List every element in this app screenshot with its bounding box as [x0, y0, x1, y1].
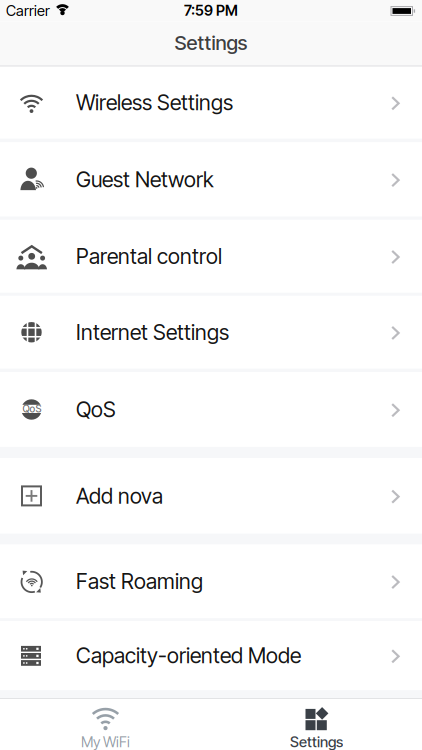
staticText: 7:59 PM [184, 2, 238, 19]
button[interactable]: Settings [211, 699, 422, 750]
button[interactable]: Add nova [0, 458, 422, 534]
staticText: My WiFi [81, 733, 130, 750]
staticText: Capacity-oriented Mode [76, 643, 301, 668]
staticText: Wireless Settings [76, 90, 233, 115]
staticText: Internet Settings [76, 319, 229, 345]
staticText: Settings [290, 733, 343, 750]
staticText: Fast Roaming [76, 568, 203, 594]
staticText: Guest Network [76, 166, 214, 192]
button[interactable]: Capacity-oriented Mode [0, 621, 422, 690]
button[interactable]: QoS [0, 372, 422, 447]
button[interactable]: Guest Network [0, 142, 422, 216]
staticText: QoS [76, 397, 116, 422]
button[interactable]: Fast Roaming [0, 545, 422, 618]
staticText: Settings [174, 31, 247, 55]
button[interactable]: Parental control [0, 220, 422, 293]
staticText: Carrier [6, 2, 50, 19]
button[interactable]: Wireless Settings [0, 67, 422, 139]
staticText: QoS [22, 403, 41, 415]
button[interactable]: My WiFi [0, 699, 211, 750]
button[interactable]: Internet Settings [0, 296, 422, 369]
staticText: Parental control [76, 243, 222, 269]
staticText: Add nova [76, 483, 163, 509]
